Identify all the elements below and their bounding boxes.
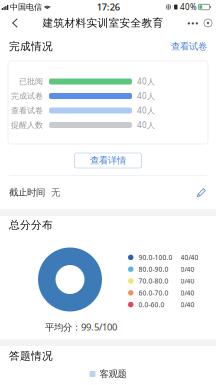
button[interactable]: Back [4,13,26,32]
staticText: 提醒人数 [11,120,43,130]
staticText: 0/40 [180,300,194,309]
button[interactable]: 截止时间 [0,176,216,209]
button[interactable]: 查看详情 [74,153,141,168]
staticText: 答题情况 [9,349,53,362]
staticText: 40人 [137,76,155,87]
staticText: 40人 [137,105,155,116]
staticText: 40% [180,2,197,12]
staticText: 客观题 [99,368,126,380]
staticText: 17:26 [97,1,120,13]
staticText: 平均分：99.5/100 [45,321,117,333]
button[interactable]: Close [204,19,212,27]
staticText: 0.0-60.0 [138,300,164,309]
staticText: 40/40 [180,253,198,262]
staticText: 建筑材料实训室安全教育 [42,16,163,29]
staticText: ••• [187,17,199,29]
button[interactable]: 查看试卷 [171,41,207,52]
staticText: 无 [51,187,60,198]
staticText: 60.0-70.0 [138,288,168,297]
staticText: 0/40 [180,277,194,285]
staticText: 0/40 [180,265,194,274]
staticText: 完成情况 [9,40,53,53]
staticText: 查看试卷 [11,106,43,115]
staticText: 已批阅 [19,77,43,86]
button[interactable]: More [187,17,199,29]
staticText: 截止时间 [9,187,45,198]
staticText: 查看详情 [90,155,126,166]
staticText: 完成试卷 [11,91,43,101]
staticText: 80.0-90.0 [138,265,168,274]
staticText: 总分分布 [9,218,53,231]
staticText: 中国电信 [10,2,42,12]
staticText: 40人 [137,91,155,101]
staticText: 70.0-80.0 [138,277,168,285]
staticText: 40人 [137,120,155,130]
staticText: 查看试卷 [171,41,207,52]
staticText: 0/40 [180,288,194,297]
staticText: 90.0-100.0 [138,253,172,262]
